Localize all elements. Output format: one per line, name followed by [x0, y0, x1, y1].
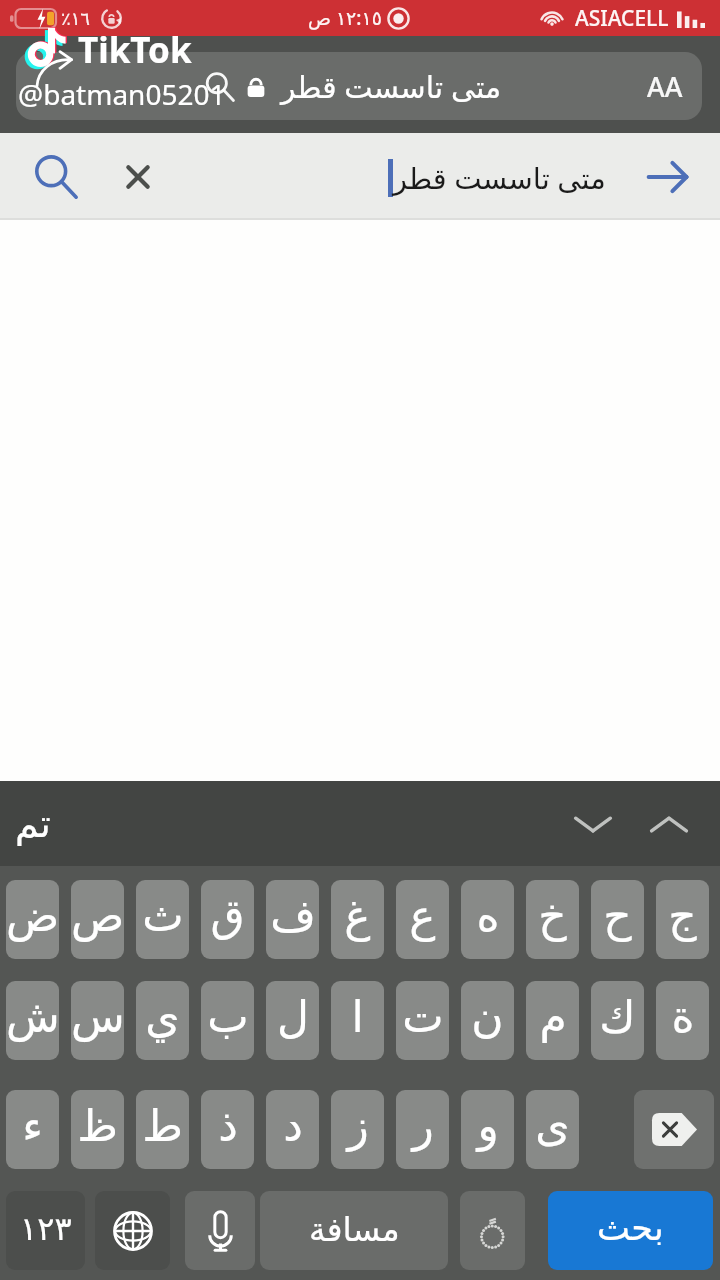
button[interactable]: Backspace [634, 1090, 714, 1169]
button[interactable]: ١٢٣ [6, 1191, 85, 1270]
staticText: ي [145, 991, 180, 1042]
button[interactable]: ع [396, 880, 449, 959]
staticText: ظ [77, 1100, 118, 1151]
staticText: ص [71, 890, 124, 941]
staticText: @batman05201 [18, 75, 226, 113]
button[interactable]: غ [331, 880, 384, 959]
staticText: ب [207, 991, 249, 1042]
button[interactable]: س [71, 981, 124, 1060]
staticText: ك [599, 991, 636, 1042]
staticText: متى تاسست قطر [393, 158, 606, 197]
button[interactable]: بحث [548, 1191, 713, 1270]
button[interactable]: ه [461, 880, 514, 959]
staticText: م [539, 991, 567, 1042]
staticText: ى [535, 1100, 570, 1151]
button[interactable]: ن [461, 981, 514, 1060]
button[interactable]: ث [136, 880, 189, 959]
button[interactable]: م [526, 981, 579, 1060]
staticText: ز [347, 1100, 369, 1151]
button[interactable]: ك [591, 981, 644, 1060]
button[interactable]: ة [656, 981, 709, 1060]
staticText: متى تاسست قطر [281, 66, 502, 107]
staticText: AA [647, 68, 683, 105]
button[interactable]: Next result [646, 155, 690, 199]
button[interactable]: و [461, 1090, 514, 1169]
staticText: ة [671, 991, 695, 1042]
button[interactable]: ض [6, 880, 59, 959]
staticText: ASIACELL [575, 4, 669, 33]
button[interactable]: د [266, 1090, 319, 1169]
staticText: ر [412, 1100, 434, 1151]
staticText: ث [142, 890, 184, 941]
staticText: ج [668, 890, 697, 941]
button[interactable]: Dictation [185, 1191, 255, 1270]
button[interactable]: Search [32, 153, 80, 201]
button[interactable]: ح [591, 880, 644, 959]
button[interactable]: ذ [201, 1090, 254, 1169]
button[interactable]: ز [331, 1090, 384, 1169]
staticText: ل [277, 991, 309, 1042]
button[interactable]: Diacritics [460, 1191, 525, 1270]
staticText: ش [6, 991, 59, 1042]
button[interactable]: ظ [71, 1090, 124, 1169]
button[interactable]: ء [6, 1090, 59, 1169]
staticText: خ [538, 890, 567, 941]
button[interactable]: ف [266, 880, 319, 959]
staticText: ٪١٦ [61, 8, 91, 29]
button[interactable]: ج [656, 880, 709, 959]
staticText: ت [402, 991, 444, 1042]
staticText: س [71, 991, 124, 1042]
button[interactable]: ب [201, 981, 254, 1060]
button[interactable]: ي [136, 981, 189, 1060]
staticText: ١٢٣ [20, 1210, 72, 1247]
button[interactable]: ط [136, 1090, 189, 1169]
button[interactable]: ى [526, 1090, 579, 1169]
button[interactable]: ش [6, 981, 59, 1060]
staticText: ذ [218, 1100, 238, 1151]
staticText: TikTok [78, 26, 192, 74]
staticText: د [283, 1100, 303, 1151]
button[interactable]: AA [16, 52, 702, 120]
staticText: غ [344, 890, 371, 941]
staticText: ه [476, 890, 500, 941]
button[interactable]: ت [396, 981, 449, 1060]
button[interactable]: Change keyboard [95, 1191, 170, 1270]
button[interactable]: Previous field [640, 795, 698, 853]
button[interactable]: ا [331, 981, 384, 1060]
button[interactable]: ص [71, 880, 124, 959]
staticText: و [477, 1100, 499, 1151]
staticText: ا [351, 991, 364, 1042]
button[interactable]: ر [396, 1090, 449, 1169]
staticText: تم [15, 802, 51, 846]
staticText: ء [22, 1100, 43, 1151]
staticText: بحث [597, 1208, 664, 1249]
staticText: ط [142, 1100, 183, 1151]
button[interactable]: Next field [564, 795, 622, 853]
staticText: ع [409, 890, 436, 941]
staticText: ن [471, 991, 504, 1042]
button[interactable]: خ [526, 880, 579, 959]
staticText: ح [603, 890, 632, 941]
staticText: ض [6, 890, 59, 941]
button[interactable]: ق [201, 880, 254, 959]
staticText: ف [270, 890, 316, 941]
staticText: ق [210, 890, 245, 941]
button[interactable]: ل [266, 981, 319, 1060]
button[interactable]: Close find bar [116, 155, 160, 199]
staticText: ١٢:١٥ ص [308, 5, 382, 31]
button[interactable]: مسافة [260, 1191, 448, 1270]
staticText: مسافة [309, 1210, 400, 1248]
